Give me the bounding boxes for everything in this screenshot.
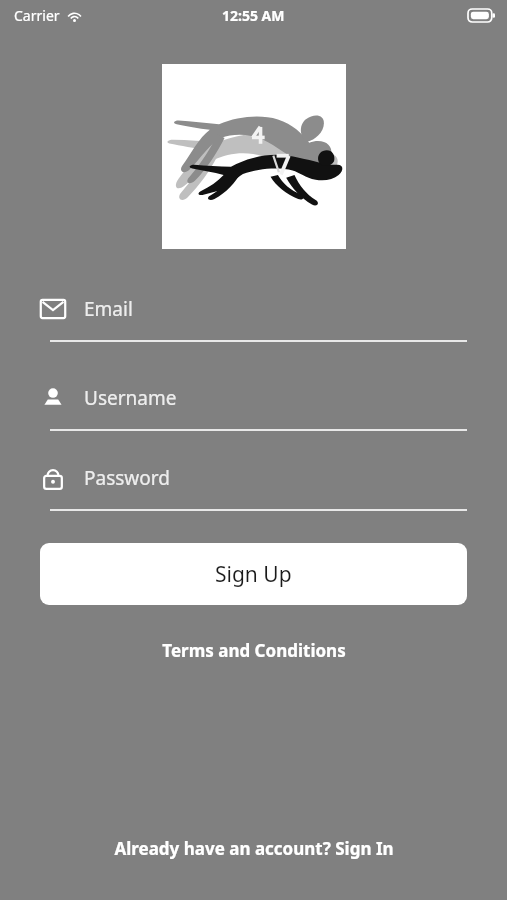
staticText: Sign Up (215, 560, 292, 589)
staticText: Password (84, 465, 170, 491)
button[interactable]: Username (40, 385, 467, 431)
button[interactable]: Already have an account? Sign In (0, 831, 507, 866)
staticText: Carrier (14, 6, 60, 25)
staticText: Email (84, 296, 133, 322)
staticText: Already have an account? Sign In (114, 837, 394, 860)
button[interactable]: Terms and Conditions (0, 633, 507, 668)
button[interactable]: Sign Up (40, 543, 467, 605)
button[interactable]: Password (40, 465, 467, 511)
staticText: Terms and Conditions (162, 639, 346, 662)
staticText: Username (84, 385, 177, 411)
staticText: 12:55 AM (222, 6, 285, 25)
button[interactable]: Email (40, 296, 467, 342)
